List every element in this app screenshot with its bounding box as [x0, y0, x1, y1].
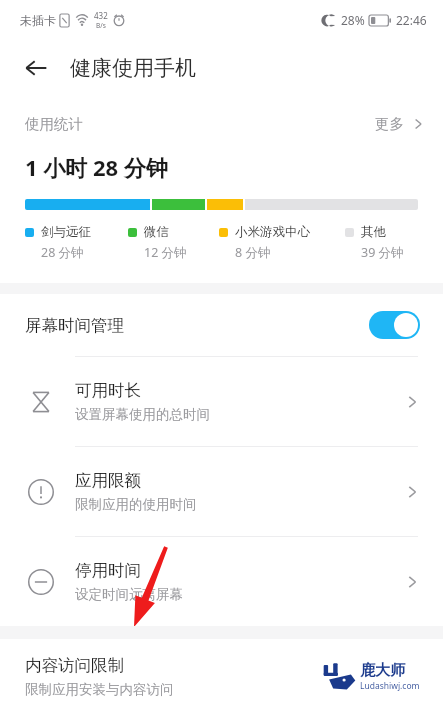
staticText: 1 小时 28 分钟 — [25, 152, 168, 182]
staticText: 39 分钟 — [361, 244, 404, 261]
staticText: Ludashiwj.com — [360, 680, 420, 692]
button[interactable]: 屏幕时间管理开关 — [369, 311, 420, 339]
button[interactable]: 使用统计 — [0, 96, 443, 152]
staticText: 健康使用手机 — [70, 55, 196, 81]
staticText: 8 分钟 — [235, 244, 271, 261]
staticText: B/s — [96, 21, 106, 30]
staticText: 更多 — [375, 115, 404, 133]
staticText: 28 分钟 — [41, 244, 84, 261]
button[interactable]: 停用时间 — [0, 537, 443, 626]
button[interactable]: 内容访问限制 — [0, 639, 443, 713]
staticText: 设置屏幕使用的总时间 — [75, 406, 210, 423]
button[interactable]: 屏幕时间管理 — [0, 294, 443, 356]
staticText: 微信 — [144, 224, 169, 240]
staticText: 限制应用的使用时间 — [75, 496, 197, 513]
staticText: 剑与远征 — [41, 224, 91, 240]
staticText: 12 分钟 — [144, 244, 187, 261]
staticText: 鹿大师 — [360, 661, 405, 680]
staticText: 28% — [341, 12, 365, 28]
staticText: 小米游戏中心 — [235, 224, 310, 240]
staticText: 未插卡 — [20, 13, 56, 28]
staticText: 可用时长 — [75, 380, 141, 401]
staticText: 屏幕时间管理 — [25, 315, 124, 336]
button[interactable]: 可用时长 — [0, 357, 443, 446]
staticText: 内容访问限制 — [25, 655, 124, 676]
staticText: 设定时间远离屏幕 — [75, 586, 183, 603]
button[interactable]: 应用限额 — [0, 447, 443, 536]
staticText: 其他 — [361, 224, 386, 240]
button[interactable]: 返回 — [14, 46, 58, 90]
staticText: 限制应用安装与内容访问 — [25, 681, 174, 698]
staticText: 停用时间 — [75, 560, 141, 581]
staticText: 22:46 — [396, 12, 427, 28]
staticText: 432 — [94, 10, 108, 21]
staticText: 应用限额 — [75, 470, 141, 491]
staticText: 使用统计 — [25, 115, 83, 133]
